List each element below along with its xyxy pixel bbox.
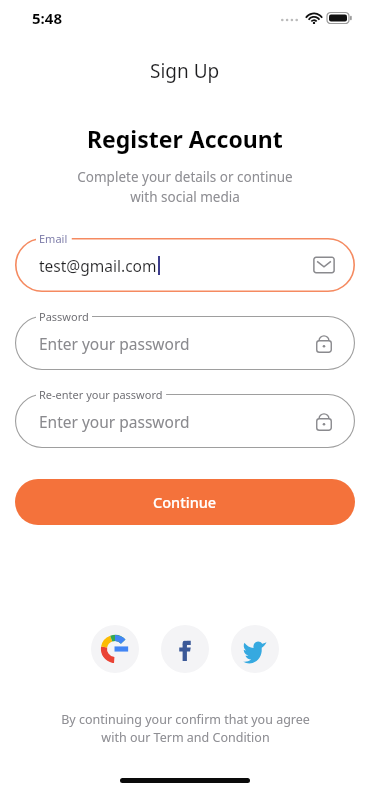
button[interactable]: Email [15, 238, 355, 292]
staticText: 5:48 [32, 8, 62, 28]
staticText: Email [39, 231, 68, 246]
button[interactable]: Sign up with Facebook [161, 625, 209, 673]
button[interactable]: Sign up with Twitter [231, 625, 279, 673]
other: Password [313, 332, 335, 354]
staticText: Register Account [87, 123, 283, 154]
button[interactable]: Sign up with Google [91, 625, 139, 673]
button[interactable]: Re-enter your password [15, 394, 355, 448]
button[interactable]: Password [15, 316, 355, 370]
other: Email [313, 254, 335, 276]
staticText: Complete your details or continue with s… [77, 168, 293, 206]
staticText: Re-enter your password [39, 387, 163, 402]
staticText: Enter your password [39, 411, 190, 432]
staticText: Enter your password [39, 333, 190, 354]
staticText: By continuing your confirm that you agre… [61, 711, 310, 746]
other: Re-enter your password [313, 410, 335, 432]
staticText: Password [39, 309, 89, 324]
staticText: test@gmail.com [39, 255, 157, 276]
staticText: Sign Up [150, 58, 220, 84]
button[interactable]: Continue [15, 479, 355, 525]
staticText: Continue [153, 492, 217, 512]
